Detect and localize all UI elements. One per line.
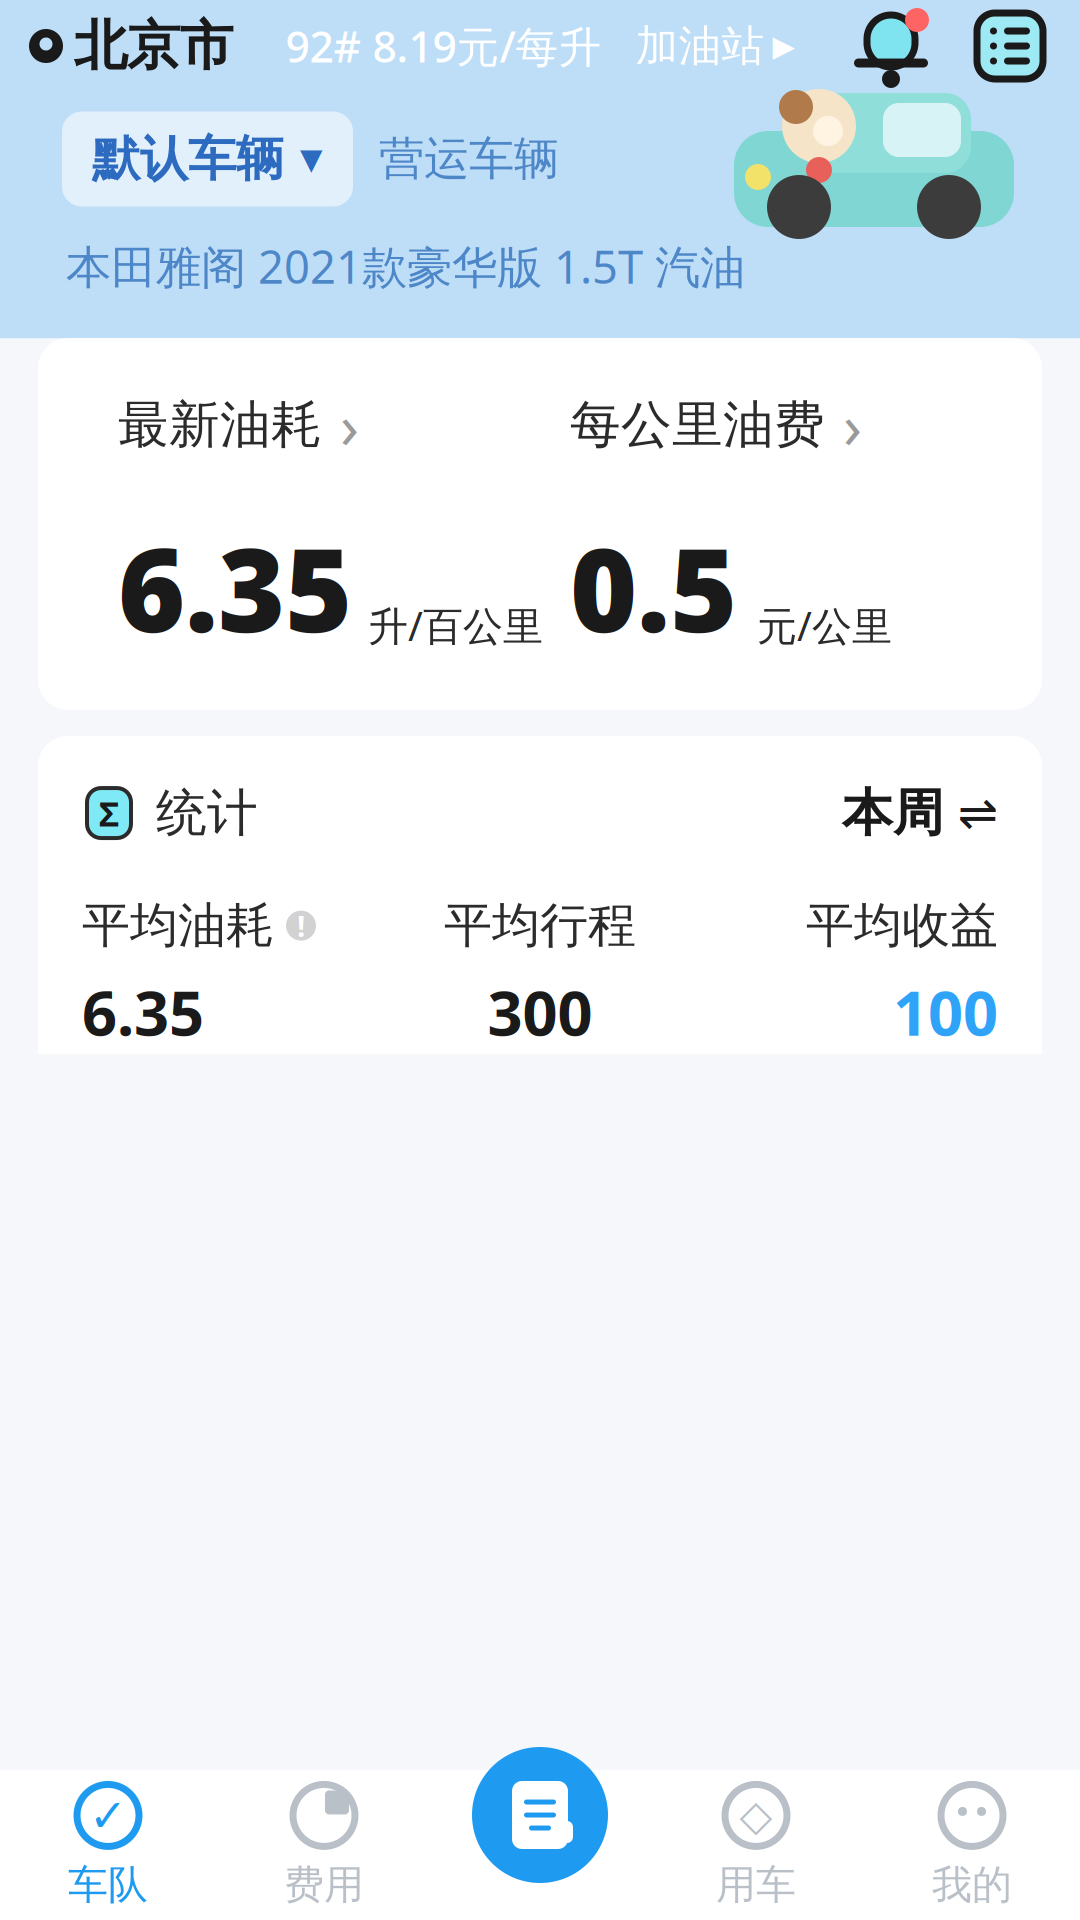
button[interactable]: 默认车辆	[62, 111, 353, 206]
staticText: 升/百公里	[368, 599, 543, 652]
staticText: 92# 8.19元/每升	[285, 18, 601, 74]
staticText: 加油站	[635, 20, 764, 72]
staticText: ▼	[300, 142, 323, 176]
staticText: 最新油耗	[118, 394, 322, 456]
staticText: 营运车辆	[379, 131, 559, 187]
button[interactable]: ✓	[0, 1762, 216, 1920]
button[interactable]: 平均收益	[693, 896, 998, 1123]
staticText: Σ	[99, 790, 119, 836]
staticText: 400	[361, 1752, 439, 1812]
staticText: 6.35	[82, 971, 204, 1052]
staticText: ✓	[89, 1790, 127, 1841]
staticText: 300	[487, 971, 592, 1052]
staticText: 本周	[842, 782, 944, 844]
staticText: 我的	[932, 1860, 1012, 1909]
staticText: 用车	[716, 1860, 796, 1909]
button[interactable]: 平均油耗	[82, 896, 387, 1123]
staticText: 默认车辆	[92, 129, 284, 188]
button[interactable]: 本周	[842, 782, 998, 844]
button[interactable]: 营运车辆	[353, 113, 585, 205]
staticText: 本田雅阁 2021款豪华版 1.5T 汽油	[66, 236, 745, 296]
button[interactable]: 通知	[848, 3, 934, 89]
button[interactable]: 费用	[216, 1762, 432, 1920]
staticText: !	[297, 906, 305, 945]
button[interactable]: 加油站	[635, 20, 795, 72]
staticText: 每公里油费	[570, 394, 825, 456]
staticText: 平均收益	[806, 896, 998, 955]
button[interactable]: 平均行程	[387, 896, 693, 1123]
staticText: 元/公里	[757, 599, 892, 652]
staticText: ⇌	[958, 786, 998, 840]
button[interactable]: 北京市	[0, 5, 233, 87]
staticText: 费用	[284, 1860, 364, 1909]
staticText: 6.35	[118, 512, 352, 664]
staticText: 统计	[156, 782, 258, 844]
staticText: ◇	[739, 1791, 772, 1840]
staticText: 320	[454, 1786, 532, 1846]
button[interactable]: 每公里油费	[570, 384, 1010, 664]
button[interactable]: 最新油耗	[70, 384, 570, 664]
staticText: ›	[843, 384, 862, 466]
staticText: 平均油耗	[82, 896, 274, 955]
button[interactable]: 本田雅阁 2021款豪华版 1.5T 汽油	[66, 228, 745, 304]
staticText: 平均行程	[444, 896, 636, 955]
staticText: ▶	[772, 29, 795, 63]
button[interactable]: 我的	[864, 1762, 1080, 1920]
staticText: 100	[893, 971, 998, 1052]
button[interactable]: 记一笔	[472, 1747, 608, 1883]
staticText: 0.5	[570, 512, 737, 664]
button[interactable]: ◇	[648, 1762, 864, 1920]
staticText: 北京市	[74, 13, 233, 79]
button[interactable]: 列表	[970, 6, 1050, 86]
staticText: 车队	[68, 1860, 148, 1909]
staticText: 360	[82, 1769, 160, 1829]
staticText: ›	[340, 384, 359, 466]
